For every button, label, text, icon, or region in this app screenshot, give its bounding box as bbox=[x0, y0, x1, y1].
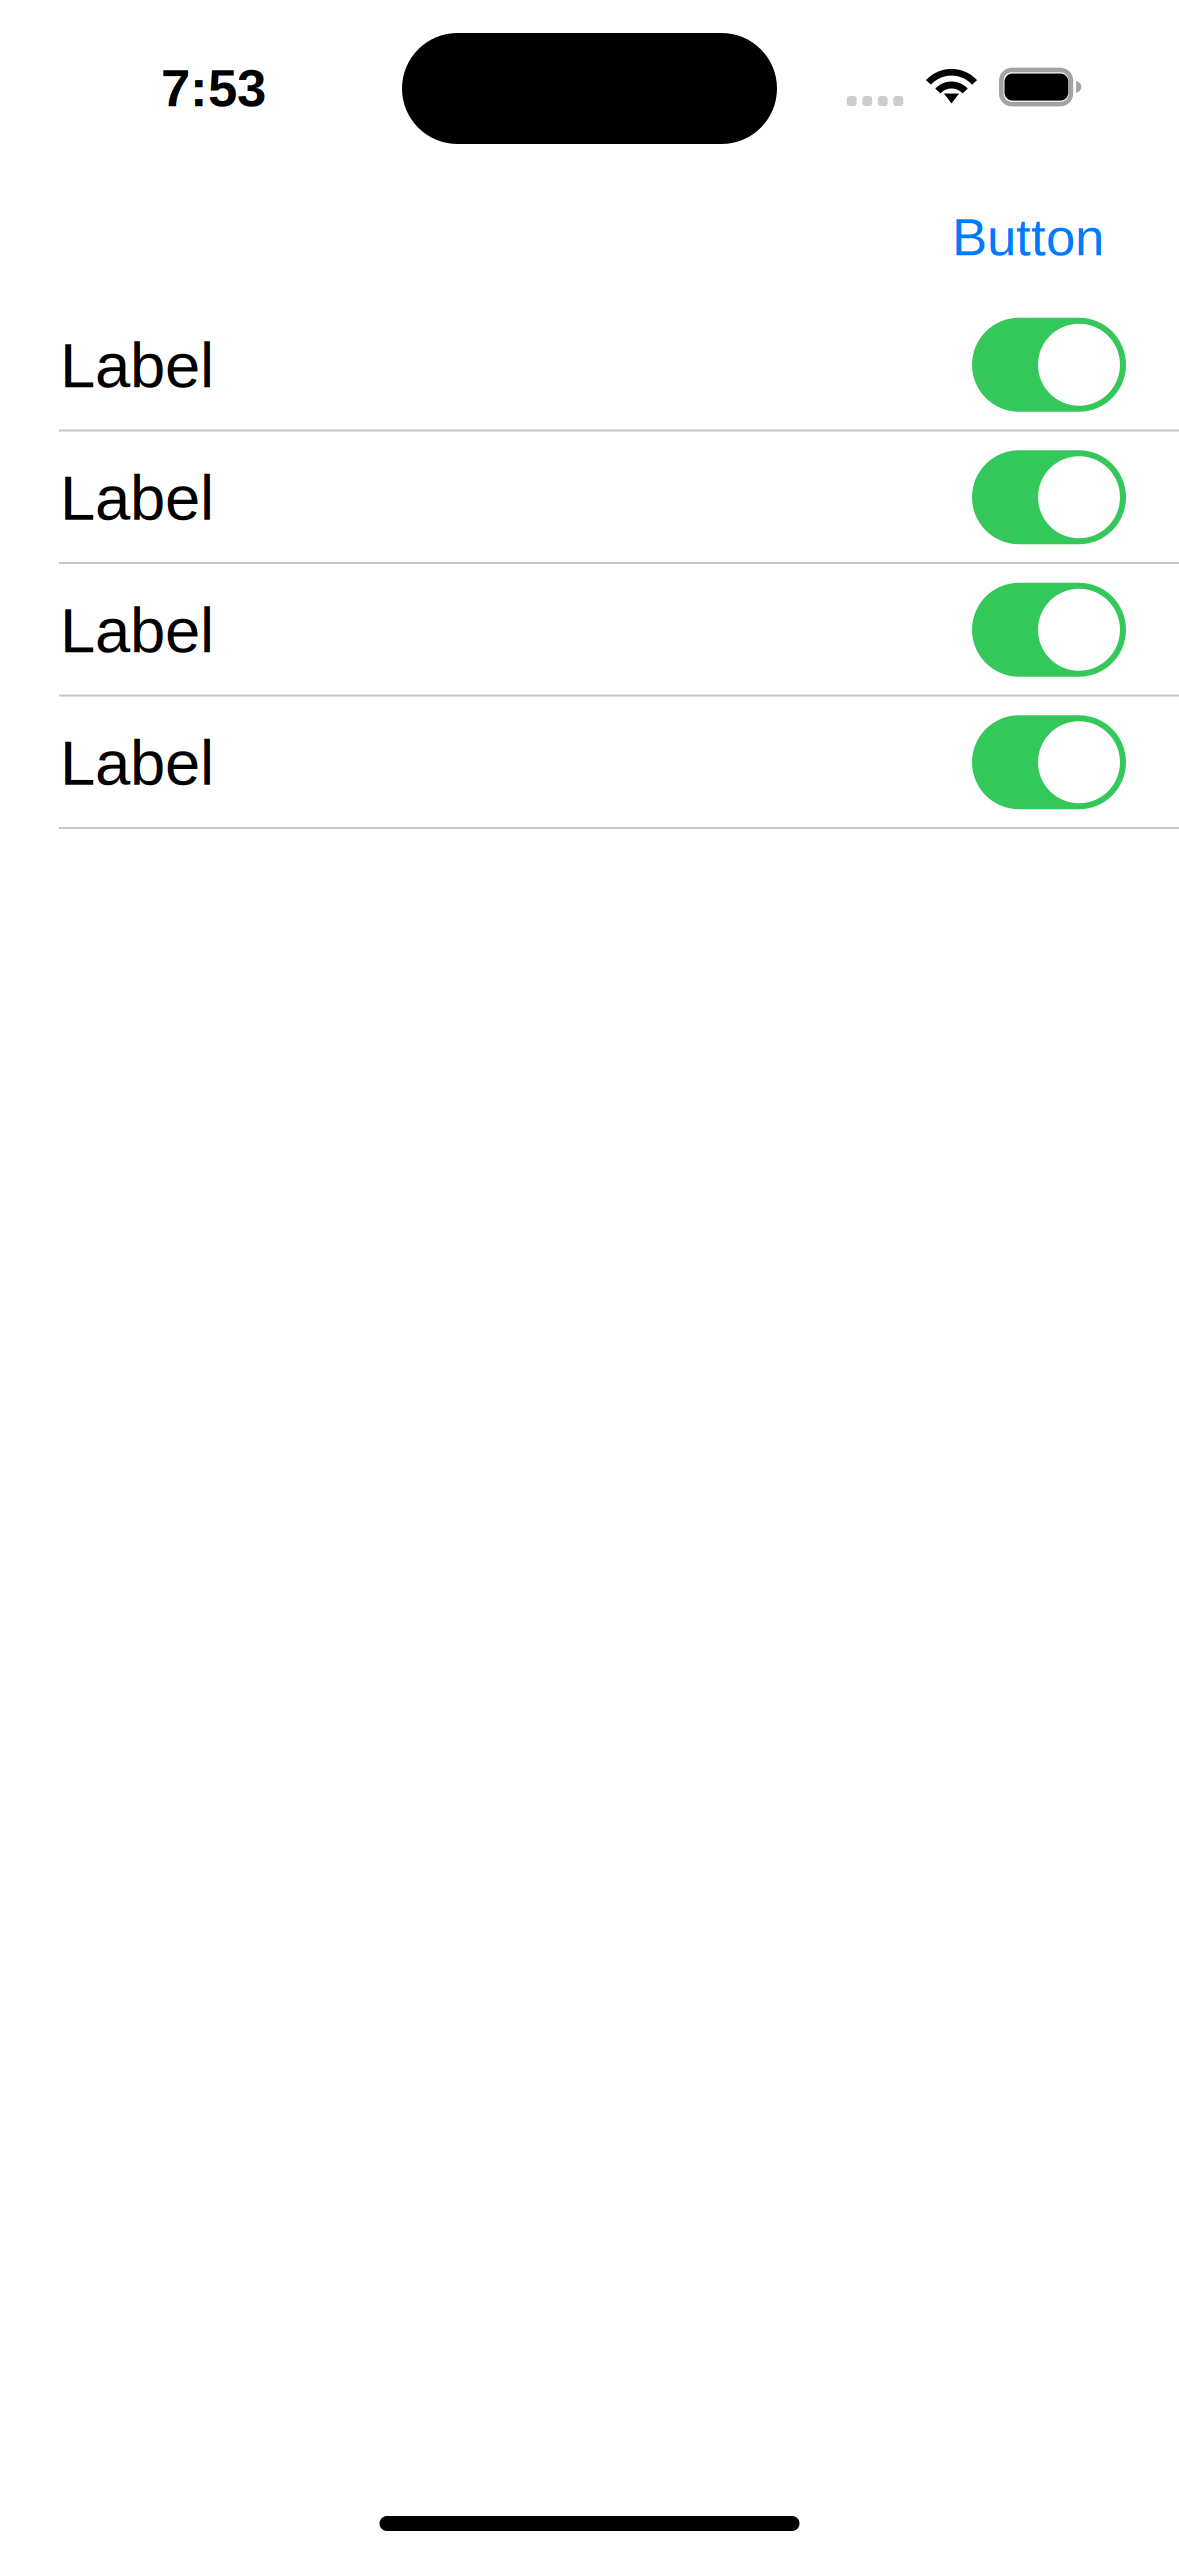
button[interactable]: On bbox=[0, 431, 1179, 563]
staticText: 7:53 bbox=[161, 59, 266, 117]
staticText: Button bbox=[952, 208, 1104, 266]
button[interactable]: On bbox=[0, 696, 1179, 828]
staticText: Label bbox=[60, 595, 214, 666]
button[interactable]: On bbox=[0, 564, 1179, 695]
button[interactable]: Button bbox=[928, 180, 1128, 290]
staticText: Label bbox=[60, 462, 214, 533]
button[interactable]: On bbox=[0, 299, 1179, 430]
staticText: Label bbox=[60, 727, 214, 798]
staticText: Label bbox=[60, 330, 214, 401]
